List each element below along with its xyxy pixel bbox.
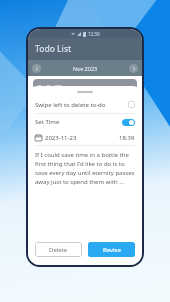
other: Date <box>35 134 42 141</box>
staticText: 18:39 <box>119 134 135 142</box>
staticText: Todo List <box>35 43 72 55</box>
staticText: Revise <box>103 246 121 254</box>
button[interactable]: Next month <box>129 64 138 73</box>
staticText: Nov 2023 <box>73 65 98 72</box>
button[interactable]: Date <box>28 130 142 145</box>
button[interactable]: Set Time <box>28 114 142 130</box>
staticText: Set Time <box>35 118 60 126</box>
button[interactable]: Revise <box>88 242 135 257</box>
button[interactable]: Swipe left to delete to-do <box>28 96 142 113</box>
button[interactable]: Previous month <box>32 64 41 73</box>
staticText: Delete <box>49 246 68 254</box>
button[interactable]: Delete <box>35 242 82 257</box>
staticText: If I could save time in a bottle the fir… <box>35 151 135 186</box>
staticText: Swipe left to delete to-do <box>35 101 106 109</box>
staticText: 12:30 <box>88 31 100 37</box>
staticText: 2023-11-23 <box>45 134 77 142</box>
staticText: To-Do(7) <box>38 83 62 91</box>
